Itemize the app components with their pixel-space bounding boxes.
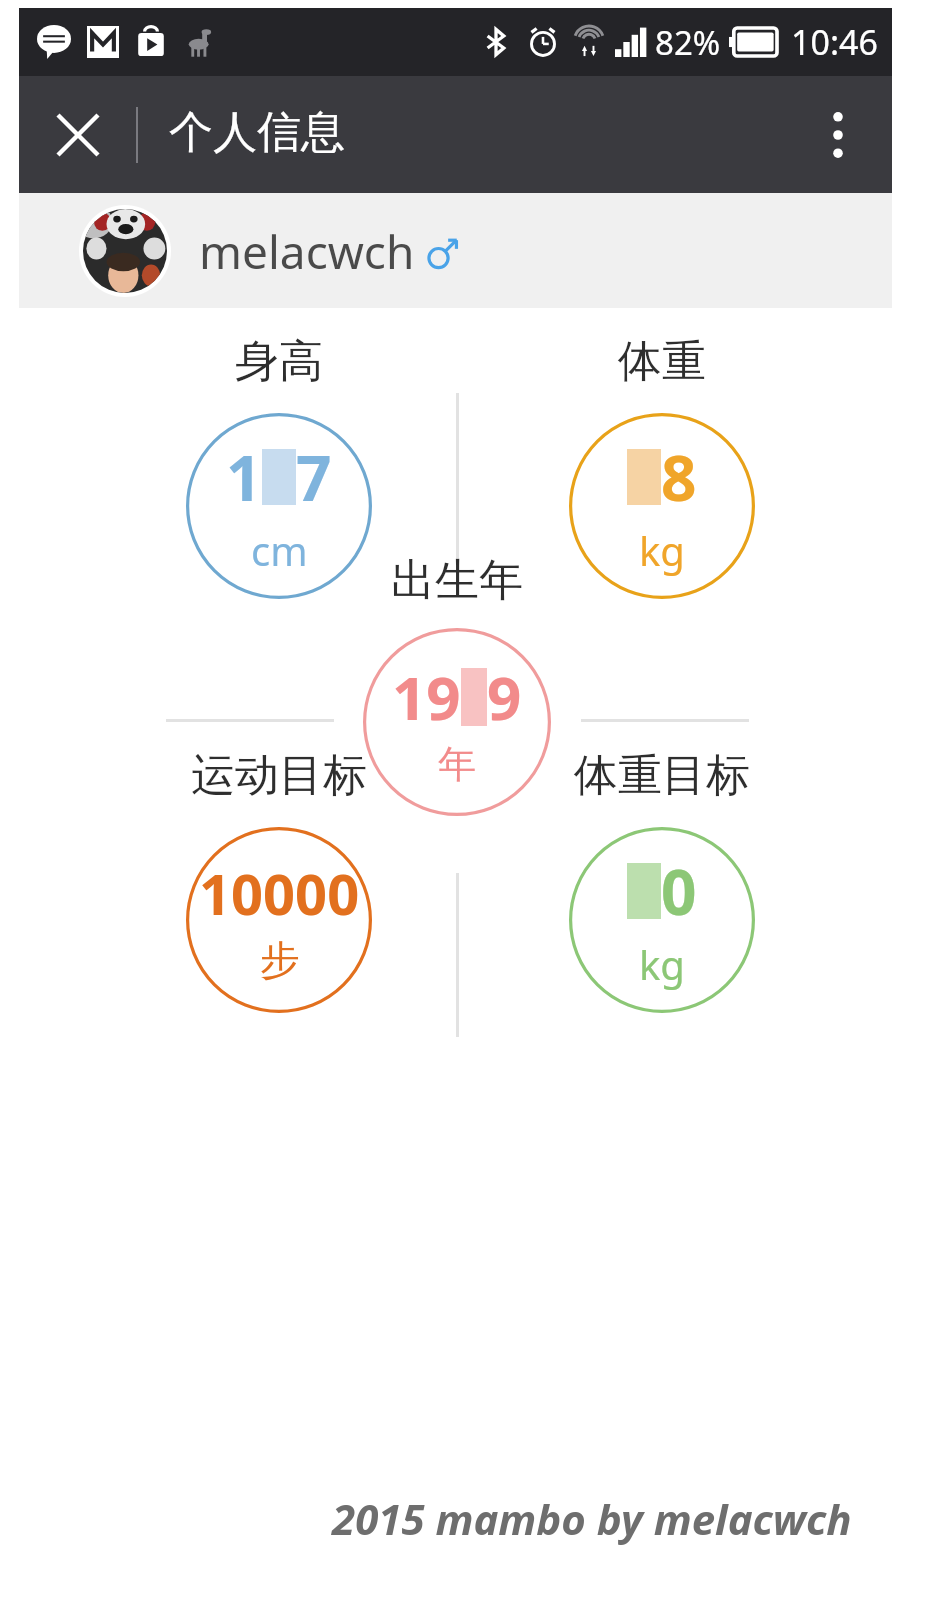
staticText: kg [639, 937, 685, 991]
staticText: 19 [392, 656, 461, 738]
button[interactable]: melacwch [19, 193, 892, 308]
staticText: 9 [487, 656, 522, 738]
staticText: cm [251, 523, 308, 577]
staticText: 7 [296, 435, 332, 519]
staticText: 2015 mambo by melacwch [332, 1490, 852, 1547]
staticText: 体重 [618, 334, 706, 389]
button[interactable]: 体重目标 [477, 748, 847, 1013]
staticText: 身高 [235, 334, 323, 389]
staticText: 运动目标 [191, 748, 367, 803]
staticText: 出生年 [391, 553, 523, 608]
button[interactable]: 运动目标 [94, 748, 464, 1013]
button[interactable]: 身高 [94, 334, 464, 599]
button[interactable]: Close [39, 96, 117, 174]
button[interactable]: More options [802, 99, 874, 171]
button[interactable]: 出生年 [292, 553, 622, 816]
staticText: 年 [438, 740, 476, 788]
staticText: 1 [226, 435, 262, 519]
staticText: 个人信息 [169, 105, 345, 160]
staticText: kg [639, 523, 685, 577]
staticText: 10:46 [791, 19, 878, 65]
button[interactable]: 体重 [477, 334, 847, 599]
staticText: 82% [655, 20, 721, 65]
staticText: melacwch [199, 220, 415, 283]
staticText: 体重目标 [574, 748, 750, 803]
staticText: 0 [661, 849, 697, 933]
staticText: 10000 [199, 855, 360, 931]
staticText: 步 [260, 935, 300, 985]
staticText: 8 [661, 435, 697, 519]
